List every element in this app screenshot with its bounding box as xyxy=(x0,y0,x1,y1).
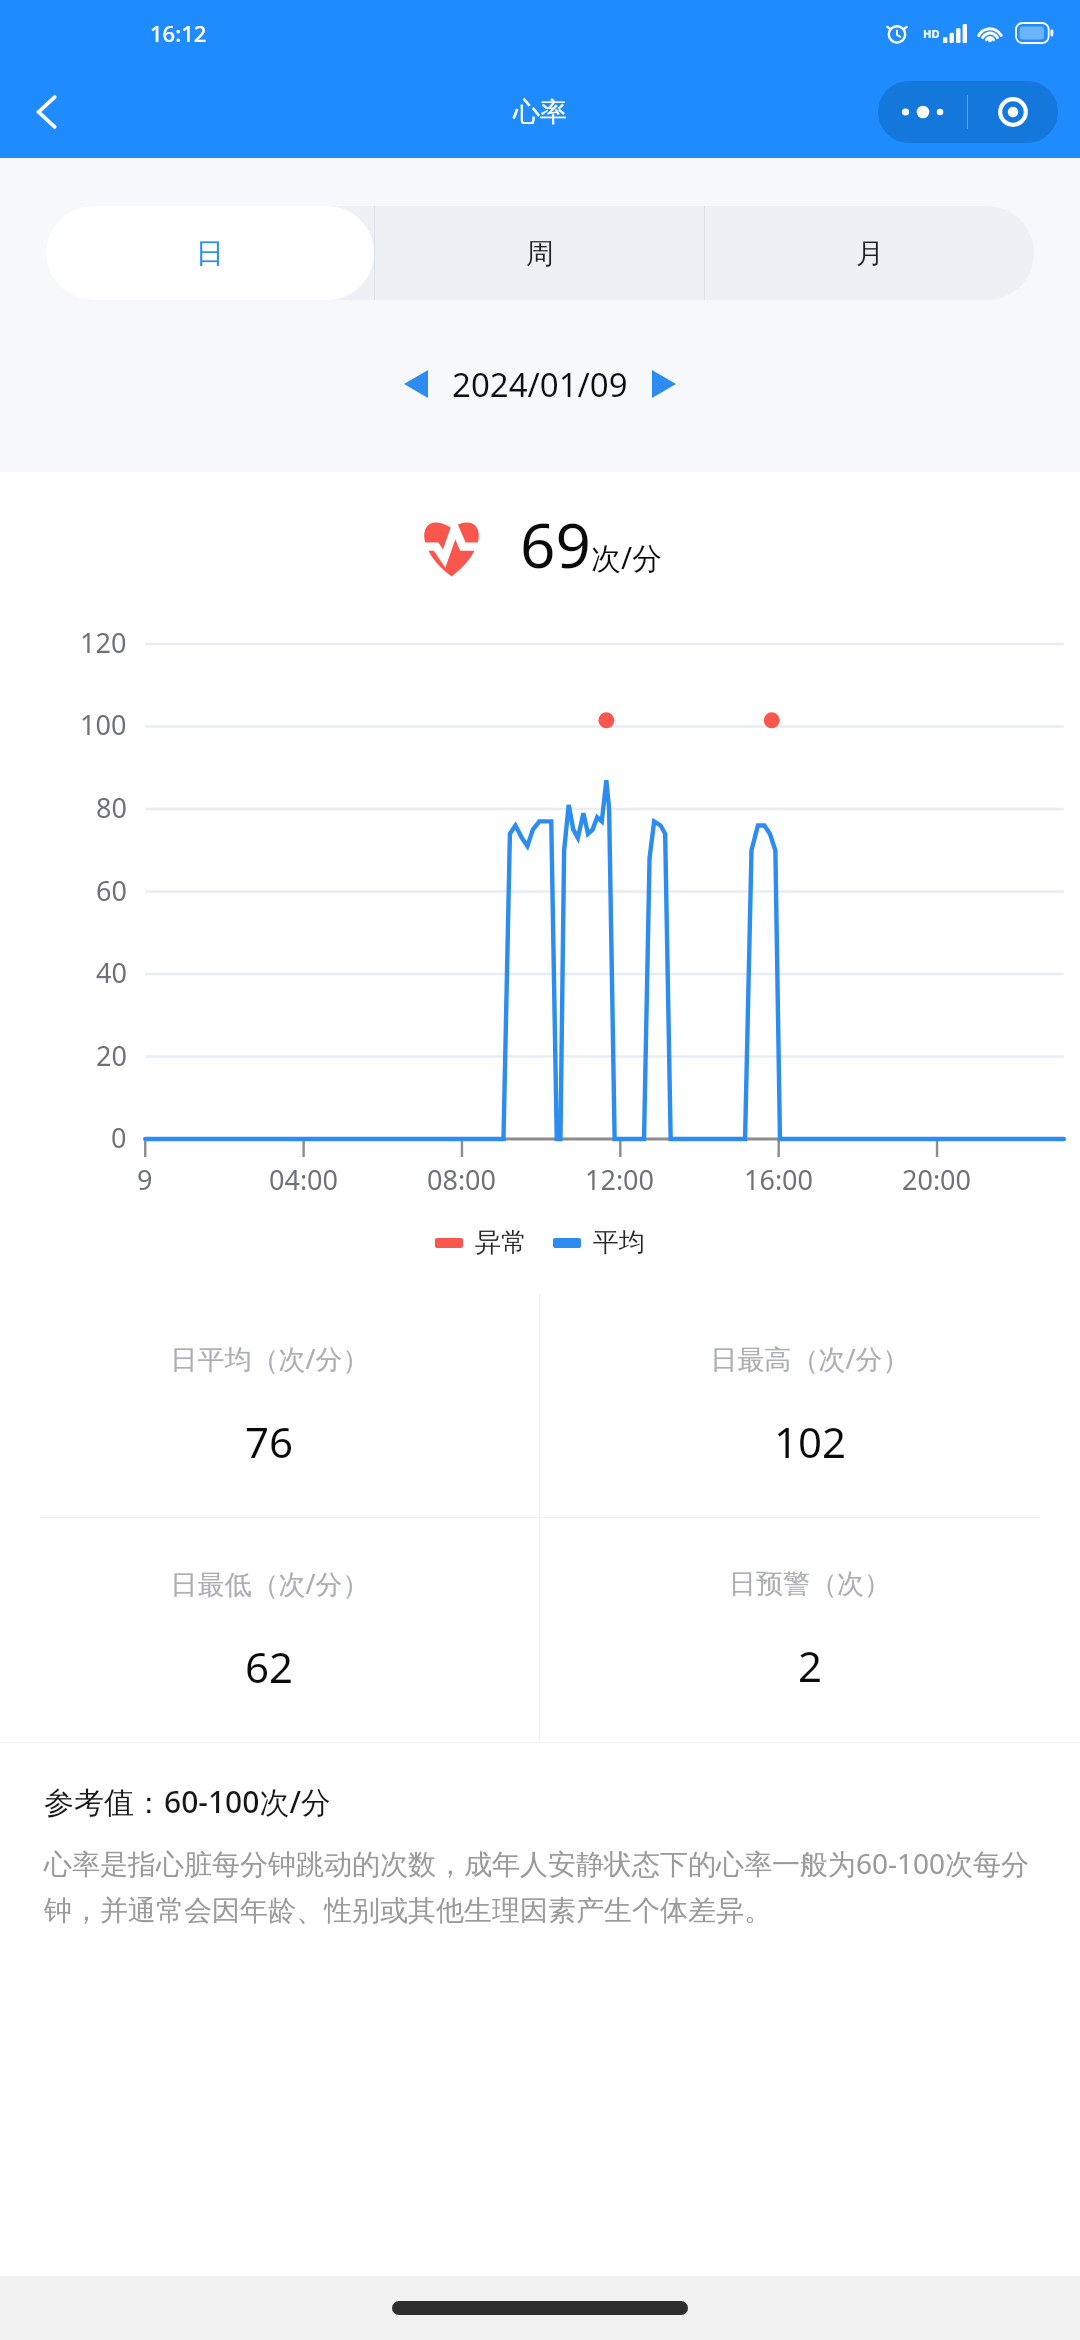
staticText: 心率 xyxy=(513,95,567,129)
button[interactable]: 日 xyxy=(46,206,374,300)
staticText: 月 xyxy=(856,236,884,271)
button[interactable]: 日最低（次/分） xyxy=(0,1518,539,1742)
button[interactable]: Menu and close mini program xyxy=(878,81,1058,143)
button[interactable]: 日最高（次/分） xyxy=(540,1293,1080,1517)
staticText: 0 xyxy=(111,1119,127,1156)
staticText: 日最低（次/分） xyxy=(170,1565,370,1602)
button[interactable]: Previous day xyxy=(386,354,446,414)
staticText: 08:00 xyxy=(427,1161,497,1198)
staticText: 12:00 xyxy=(585,1161,655,1198)
staticText: HD xyxy=(923,26,940,41)
staticText: 异常 xyxy=(475,1226,527,1259)
button[interactable]: Back xyxy=(16,81,78,143)
staticText: 日 xyxy=(196,236,224,271)
button[interactable]: Next day xyxy=(634,354,694,414)
staticText: 62 xyxy=(245,1638,294,1695)
button[interactable]: 日平均（次/分） xyxy=(0,1293,539,1517)
staticText: 2 xyxy=(798,1637,823,1694)
staticText: 9 xyxy=(137,1161,153,1198)
staticText: 04:00 xyxy=(269,1161,339,1198)
staticText: 69 xyxy=(520,502,591,586)
staticText: 20:00 xyxy=(902,1161,972,1198)
staticText: 周 xyxy=(526,236,554,271)
staticText: 100 xyxy=(80,706,127,743)
staticText: 80 xyxy=(96,789,127,826)
staticText: 76 xyxy=(245,1413,294,1470)
staticText: 102 xyxy=(774,1413,847,1470)
staticText: 日最高（次/分） xyxy=(710,1340,910,1377)
staticText: 2024/01/09 xyxy=(452,362,628,407)
staticText: 120 xyxy=(80,624,127,661)
button[interactable]: 日预警（次） xyxy=(540,1518,1080,1742)
staticText: 40 xyxy=(96,954,127,991)
staticText: 16:00 xyxy=(744,1161,814,1198)
staticText: 60 xyxy=(96,872,127,909)
staticText: 20 xyxy=(96,1037,127,1074)
staticText: 16:12 xyxy=(150,18,207,48)
button[interactable]: 周 xyxy=(375,206,704,300)
staticText: 次/分 xyxy=(591,537,663,578)
button[interactable]: 月 xyxy=(705,206,1034,300)
staticText: 日预警（次） xyxy=(729,1567,891,1601)
staticText: 平均 xyxy=(593,1226,645,1259)
staticText: 心率是指心脏每分钟跳动的次数，成年人安静状态下的心率一般为60-100次每分钟，… xyxy=(44,1844,1052,1929)
staticText: 日平均（次/分） xyxy=(170,1340,370,1377)
staticText: 参考值：60-100次/分 xyxy=(44,1781,331,1822)
